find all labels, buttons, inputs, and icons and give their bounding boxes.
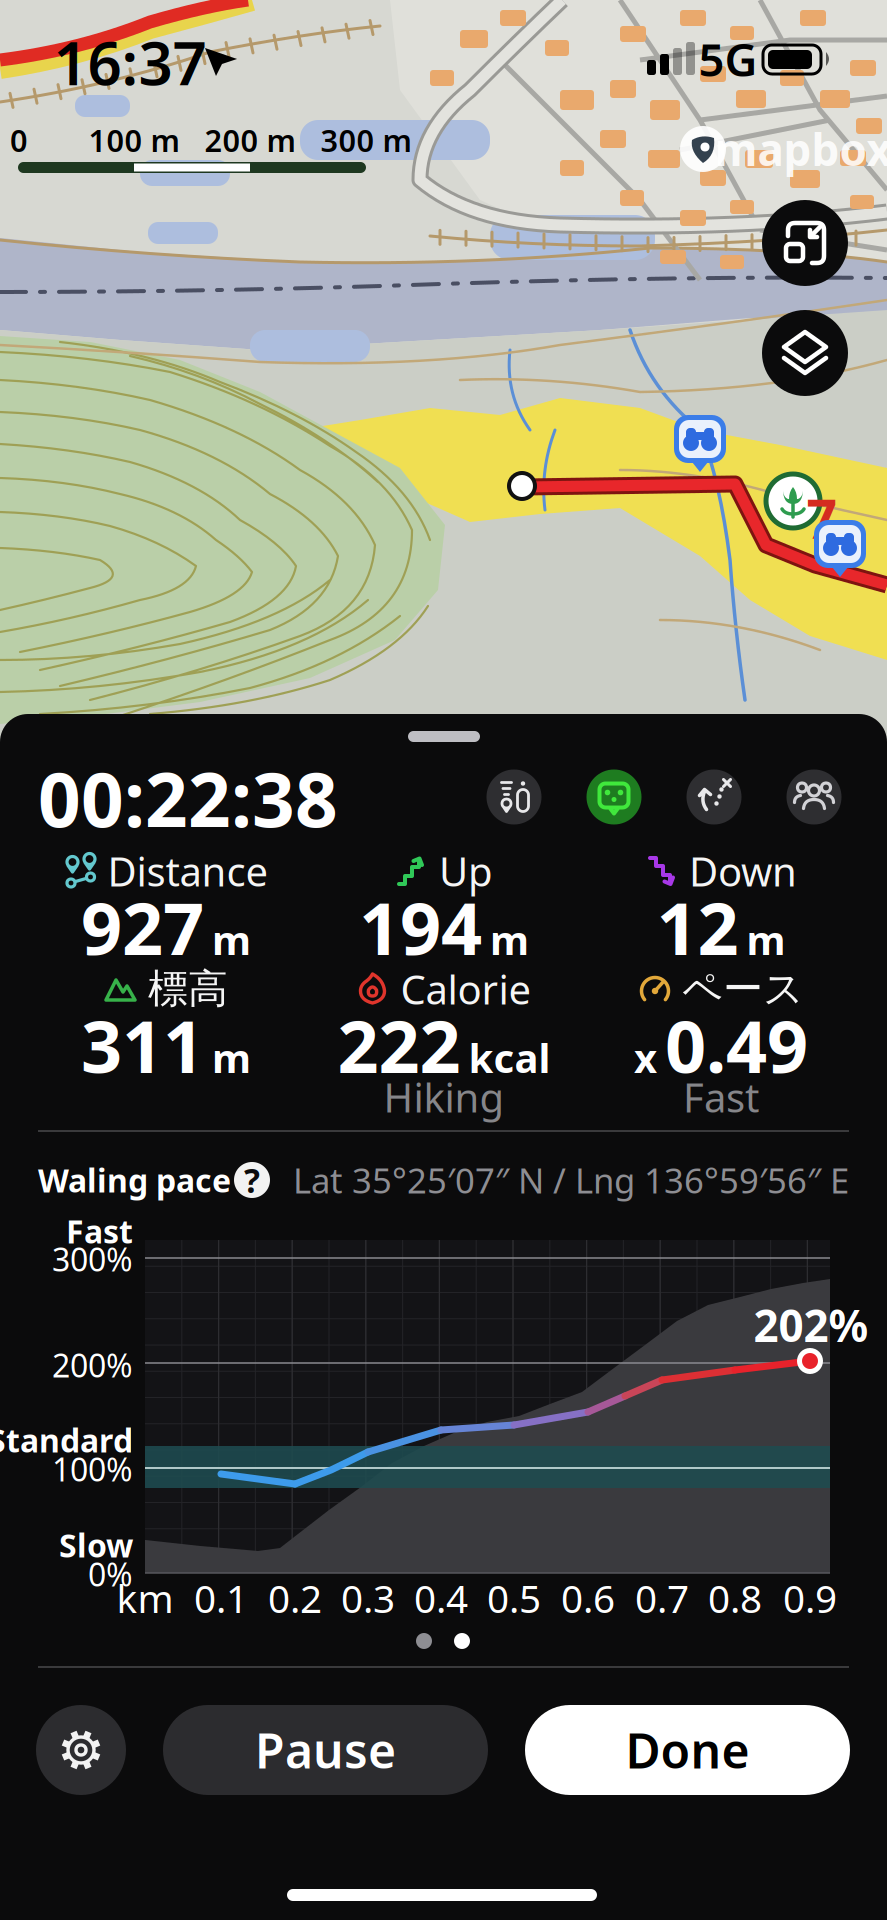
staticText: 0.49 (665, 997, 808, 1093)
staticText: Up (439, 844, 493, 897)
staticText: Waling pace (38, 1159, 231, 1201)
staticText: m (212, 1031, 251, 1084)
staticText: 300 m (320, 120, 411, 160)
staticText: Slow (59, 1524, 133, 1566)
button[interactable]: Done (525, 1705, 850, 1795)
staticText: 0.4 (414, 1572, 468, 1624)
staticText: Fast (683, 1070, 759, 1123)
staticText: km (116, 1572, 173, 1624)
staticText: kcal (468, 1031, 550, 1084)
staticText: 16:37 (53, 22, 206, 102)
button[interactable]: Waypoints (486, 769, 541, 824)
staticText: 194 (359, 879, 482, 975)
staticText: 7 (806, 483, 837, 553)
staticText: 100 m (88, 120, 179, 160)
staticText: Hiking (383, 1070, 504, 1123)
staticText: Lat 35°25′07″ N / Lng 136°59′56″ E (293, 1157, 849, 1203)
staticText: 0.9 (783, 1572, 837, 1624)
staticText: 202% (753, 1296, 868, 1354)
staticText: 0.5 (487, 1572, 541, 1624)
staticText: 0 (10, 120, 28, 160)
staticText: mapbox (714, 120, 887, 178)
staticText: 0.1 (194, 1572, 248, 1624)
staticText: 12 (656, 879, 738, 975)
staticText: 0.6 (561, 1572, 615, 1624)
staticText: m (212, 913, 251, 966)
button[interactable]: Routing (686, 769, 741, 824)
button[interactable]: Group (786, 769, 841, 824)
staticText: 300% (52, 1238, 133, 1280)
staticText: Calorie (400, 962, 531, 1015)
button[interactable]: About walking pace (234, 1162, 270, 1198)
staticText: 927 (81, 879, 204, 975)
staticText: ペース (682, 964, 804, 1013)
button[interactable]: Pause (163, 1705, 488, 1795)
staticText: Distance (107, 844, 268, 897)
staticText: Fast (66, 1210, 133, 1252)
staticText: m (490, 913, 529, 966)
staticText: 0% (88, 1553, 133, 1595)
staticText: 0.8 (708, 1572, 762, 1624)
staticText: ? (244, 1158, 260, 1202)
staticText: Done (625, 1718, 749, 1782)
staticText: 311 (81, 997, 204, 1093)
staticText: Pause (255, 1718, 396, 1782)
staticText: Down (689, 844, 797, 897)
staticText: x (634, 1031, 657, 1084)
button[interactable]: Minimize map (762, 200, 848, 286)
staticText: m (746, 913, 785, 966)
staticText: Standard (0, 1419, 133, 1461)
staticText: 0.2 (268, 1572, 322, 1624)
button[interactable]: Settings (36, 1705, 126, 1795)
staticText: 100% (52, 1448, 133, 1490)
staticText: 標高 (148, 964, 228, 1013)
button[interactable]: Pet companion (586, 769, 641, 824)
staticText: 200 m (204, 120, 295, 160)
staticText: 0.7 (635, 1572, 689, 1624)
staticText: 0.3 (341, 1572, 395, 1624)
staticText: 200% (52, 1344, 133, 1386)
staticText: 00:22:38 (38, 748, 338, 848)
button[interactable]: Map layers (762, 310, 848, 396)
staticText: 222 (337, 997, 460, 1093)
staticText: 5G (698, 29, 757, 89)
